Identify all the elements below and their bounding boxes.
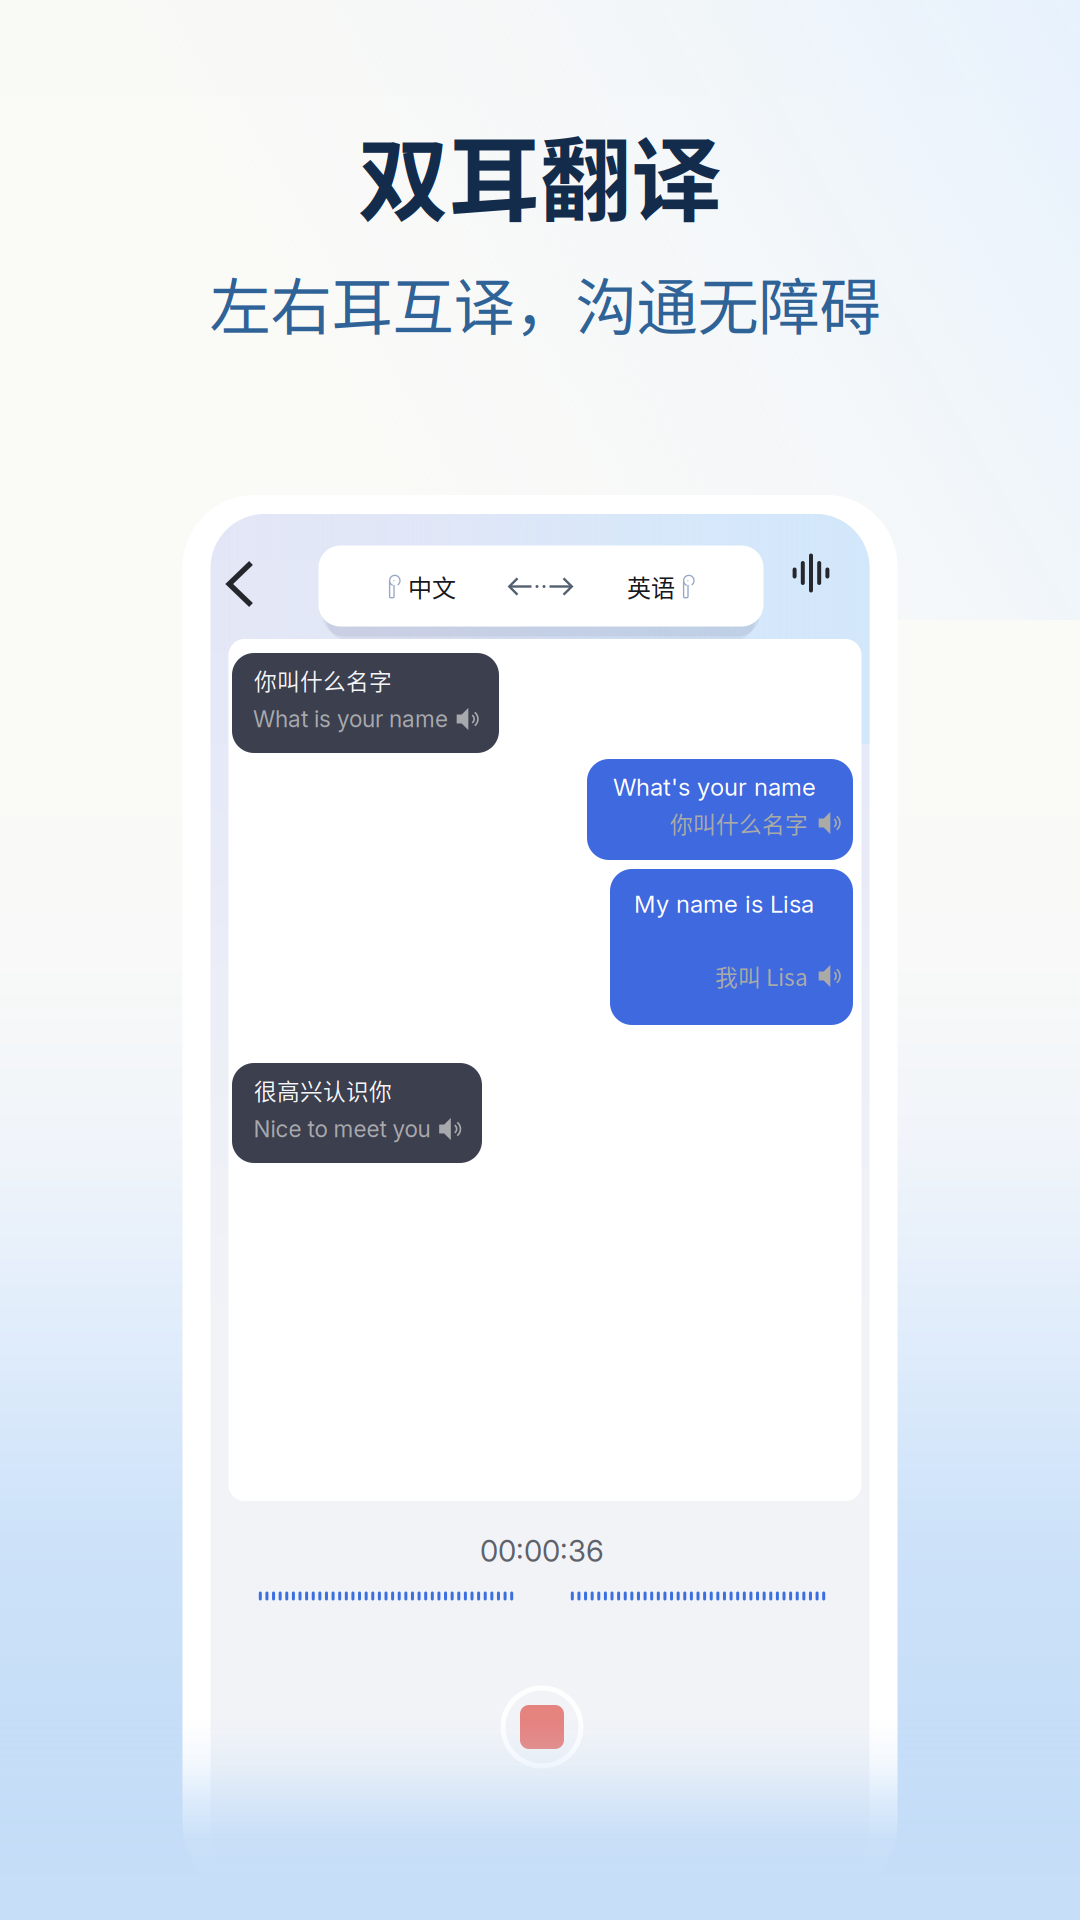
button[interactable]: 你叫什么名字 [232,653,499,753]
button[interactable]: What's your name [587,759,853,860]
staticText: 左右耳互译，沟通无障碍 [209,259,880,347]
button[interactable]: Audio levels [783,545,839,601]
button[interactable]: Back [210,549,270,619]
staticText: Nice to meet you [253,1115,430,1143]
staticText: 我叫 Lisa [715,960,808,992]
staticText: What's your name [613,772,816,801]
button[interactable]: Stop recording [492,1677,592,1777]
button[interactable]: 很高兴认识你 [232,1063,482,1163]
staticText: 很高兴认识你 [254,1074,392,1106]
button[interactable]: My name is Lisa [610,869,853,1025]
staticText: 你叫什么名字 [670,807,808,839]
staticText: 双耳翻译 [358,108,722,240]
staticText: 你叫什么名字 [254,664,392,696]
button[interactable]: 中文 [318,545,763,626]
staticText: 00:00:36 [480,1533,604,1569]
staticText: What is your name [253,705,448,733]
staticText: 英语 [627,569,675,604]
staticText: My name is Lisa [634,889,814,918]
staticText: 中文 [408,569,456,604]
